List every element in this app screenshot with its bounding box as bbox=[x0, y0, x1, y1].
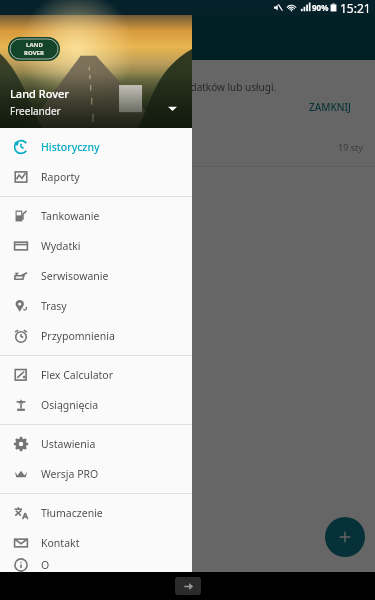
staticText: Tankowanie bbox=[41, 209, 100, 223]
button[interactable]: Raporty bbox=[0, 162, 192, 192]
staticText: Flex Calculator bbox=[41, 368, 113, 382]
staticText: Wydatki bbox=[41, 239, 81, 253]
button[interactable]: Ustawienia bbox=[0, 429, 192, 459]
button[interactable]: Historyczny bbox=[0, 132, 192, 162]
staticText: Land Rover bbox=[10, 86, 69, 101]
staticText: 15:21 bbox=[340, 0, 371, 15]
staticText: Historyczny bbox=[41, 140, 100, 154]
button[interactable]: Trasy bbox=[0, 291, 192, 321]
staticText: Ustawienia bbox=[41, 437, 96, 451]
button[interactable]: Osiągnięcia bbox=[0, 390, 192, 420]
button[interactable]: Tłumaczenie bbox=[0, 498, 192, 528]
staticText: Dodaj pierwszy wpis tankowania, wydatków… bbox=[20, 80, 277, 94]
button[interactable]: Przypomnienia bbox=[0, 321, 192, 351]
button[interactable]: Wstecz bbox=[175, 577, 201, 595]
staticText: ROVER bbox=[24, 49, 44, 57]
button[interactable]: LAND bbox=[8, 37, 60, 61]
staticText: Przypomnienia bbox=[41, 329, 115, 343]
staticText: Freelander bbox=[10, 104, 61, 118]
staticText: 19 sty bbox=[338, 141, 363, 153]
staticText: Serwisowanie bbox=[41, 269, 109, 283]
button[interactable]: Dodaj bbox=[325, 517, 365, 557]
staticText: Wersja PRO bbox=[41, 467, 99, 481]
button[interactable]: Odometr stan początkowo. bbox=[0, 128, 375, 166]
staticText: Trasy bbox=[41, 299, 67, 313]
button[interactable] bbox=[0, 15, 375, 572]
staticText: Osiągnięcia bbox=[41, 398, 99, 412]
button[interactable]: Serwisowanie bbox=[0, 261, 192, 291]
button[interactable]: Tankowanie bbox=[0, 201, 192, 231]
button[interactable]: Kontakt bbox=[0, 528, 192, 558]
staticText: O bbox=[41, 558, 50, 572]
button[interactable]: O bbox=[0, 558, 192, 572]
staticText: ZAMKNIJ bbox=[309, 100, 351, 114]
staticText: 90% bbox=[312, 2, 329, 13]
button[interactable]: Flex Calculator bbox=[0, 360, 192, 390]
staticText: Tłumaczenie bbox=[41, 506, 103, 520]
staticText: LAND bbox=[26, 41, 43, 49]
staticText: Odometr stan początkowo. bbox=[12, 140, 139, 154]
button[interactable]: Wybierz pojazd bbox=[164, 100, 180, 116]
button[interactable]: Wersja PRO bbox=[0, 459, 192, 489]
staticText: Raporty bbox=[41, 170, 80, 184]
button[interactable]: Wydatki bbox=[0, 231, 192, 261]
staticText: Kontakt bbox=[41, 536, 80, 550]
button[interactable]: LAND bbox=[0, 15, 192, 128]
button[interactable]: ZAMKNIJ bbox=[301, 96, 359, 118]
button[interactable]: Dodaj pierwszy wpis tankowania, wydatków… bbox=[8, 66, 367, 122]
